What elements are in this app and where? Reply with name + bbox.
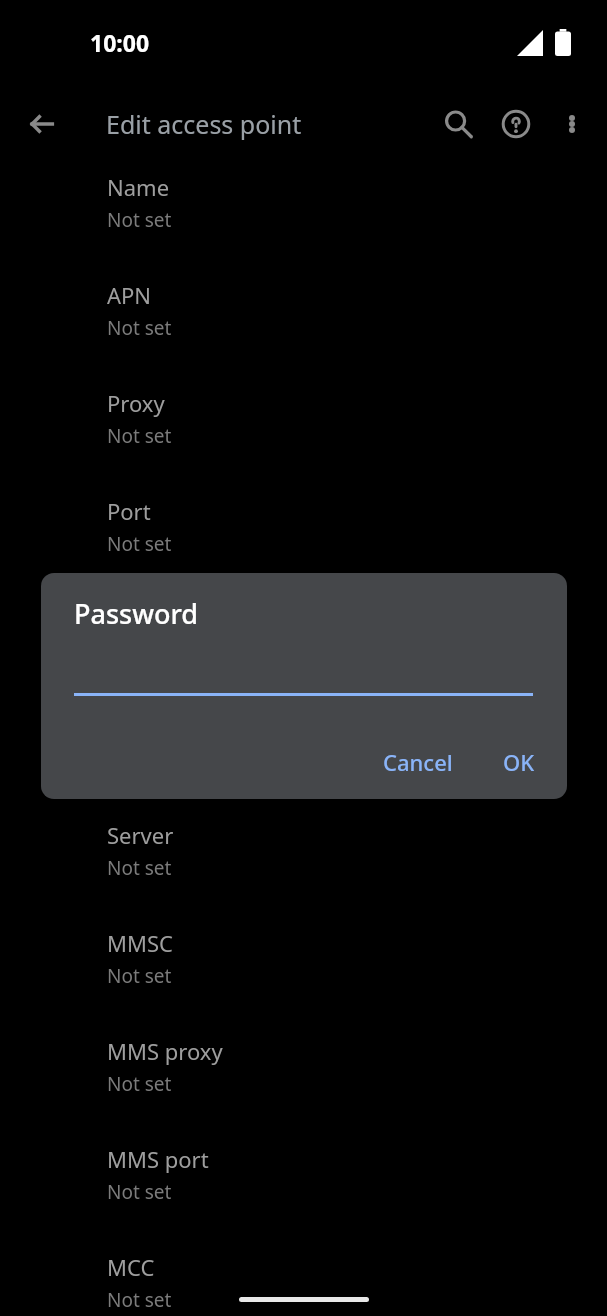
button[interactable]: Password [0, 704, 607, 812]
button[interactable]: More options [545, 97, 599, 151]
staticText: OK [503, 747, 535, 777]
staticText: MMSC [107, 928, 173, 958]
staticText: MMS port [107, 1144, 209, 1174]
button[interactable]: Search [429, 95, 487, 153]
staticText: Server [107, 820, 174, 850]
staticText: Not set [107, 1071, 172, 1097]
button[interactable]: MMS proxy [0, 1028, 607, 1136]
button[interactable]: MCC [0, 1244, 607, 1316]
button[interactable]: Proxy [0, 380, 607, 488]
button[interactable]: Name [0, 164, 607, 272]
staticText: MMS proxy [107, 1036, 223, 1066]
button[interactable]: Server [0, 812, 607, 920]
button[interactable]: Port [0, 488, 607, 596]
staticText: Port [107, 496, 151, 526]
staticText: Not set [107, 963, 172, 989]
staticText: Edit access point [106, 107, 302, 141]
button[interactable]: Help [487, 95, 545, 153]
staticText: Not set [107, 315, 172, 341]
staticText: Not set [107, 423, 172, 449]
button[interactable]: Back [18, 100, 66, 148]
staticText: APN [107, 280, 152, 310]
staticText: Not set [107, 207, 172, 233]
staticText: Username [107, 604, 215, 634]
staticText: Not set [107, 1287, 172, 1313]
button[interactable]: Username [0, 596, 607, 704]
staticText: Cancel [383, 747, 453, 777]
staticText: Not set [107, 531, 172, 557]
staticText: Not set [107, 855, 172, 881]
staticText: Not set [107, 1179, 172, 1205]
button[interactable]: Cancel [367, 735, 469, 789]
button[interactable]: OK [487, 735, 551, 789]
button[interactable]: MMS port [0, 1136, 607, 1244]
staticText: Proxy [107, 388, 165, 418]
staticText: 10:00 [90, 27, 150, 58]
staticText: Name [107, 172, 170, 202]
button[interactable]: APN [0, 272, 607, 380]
button[interactable]: MMSC [0, 920, 607, 1028]
staticText: Password [74, 595, 199, 632]
staticText: MCC [107, 1252, 155, 1282]
